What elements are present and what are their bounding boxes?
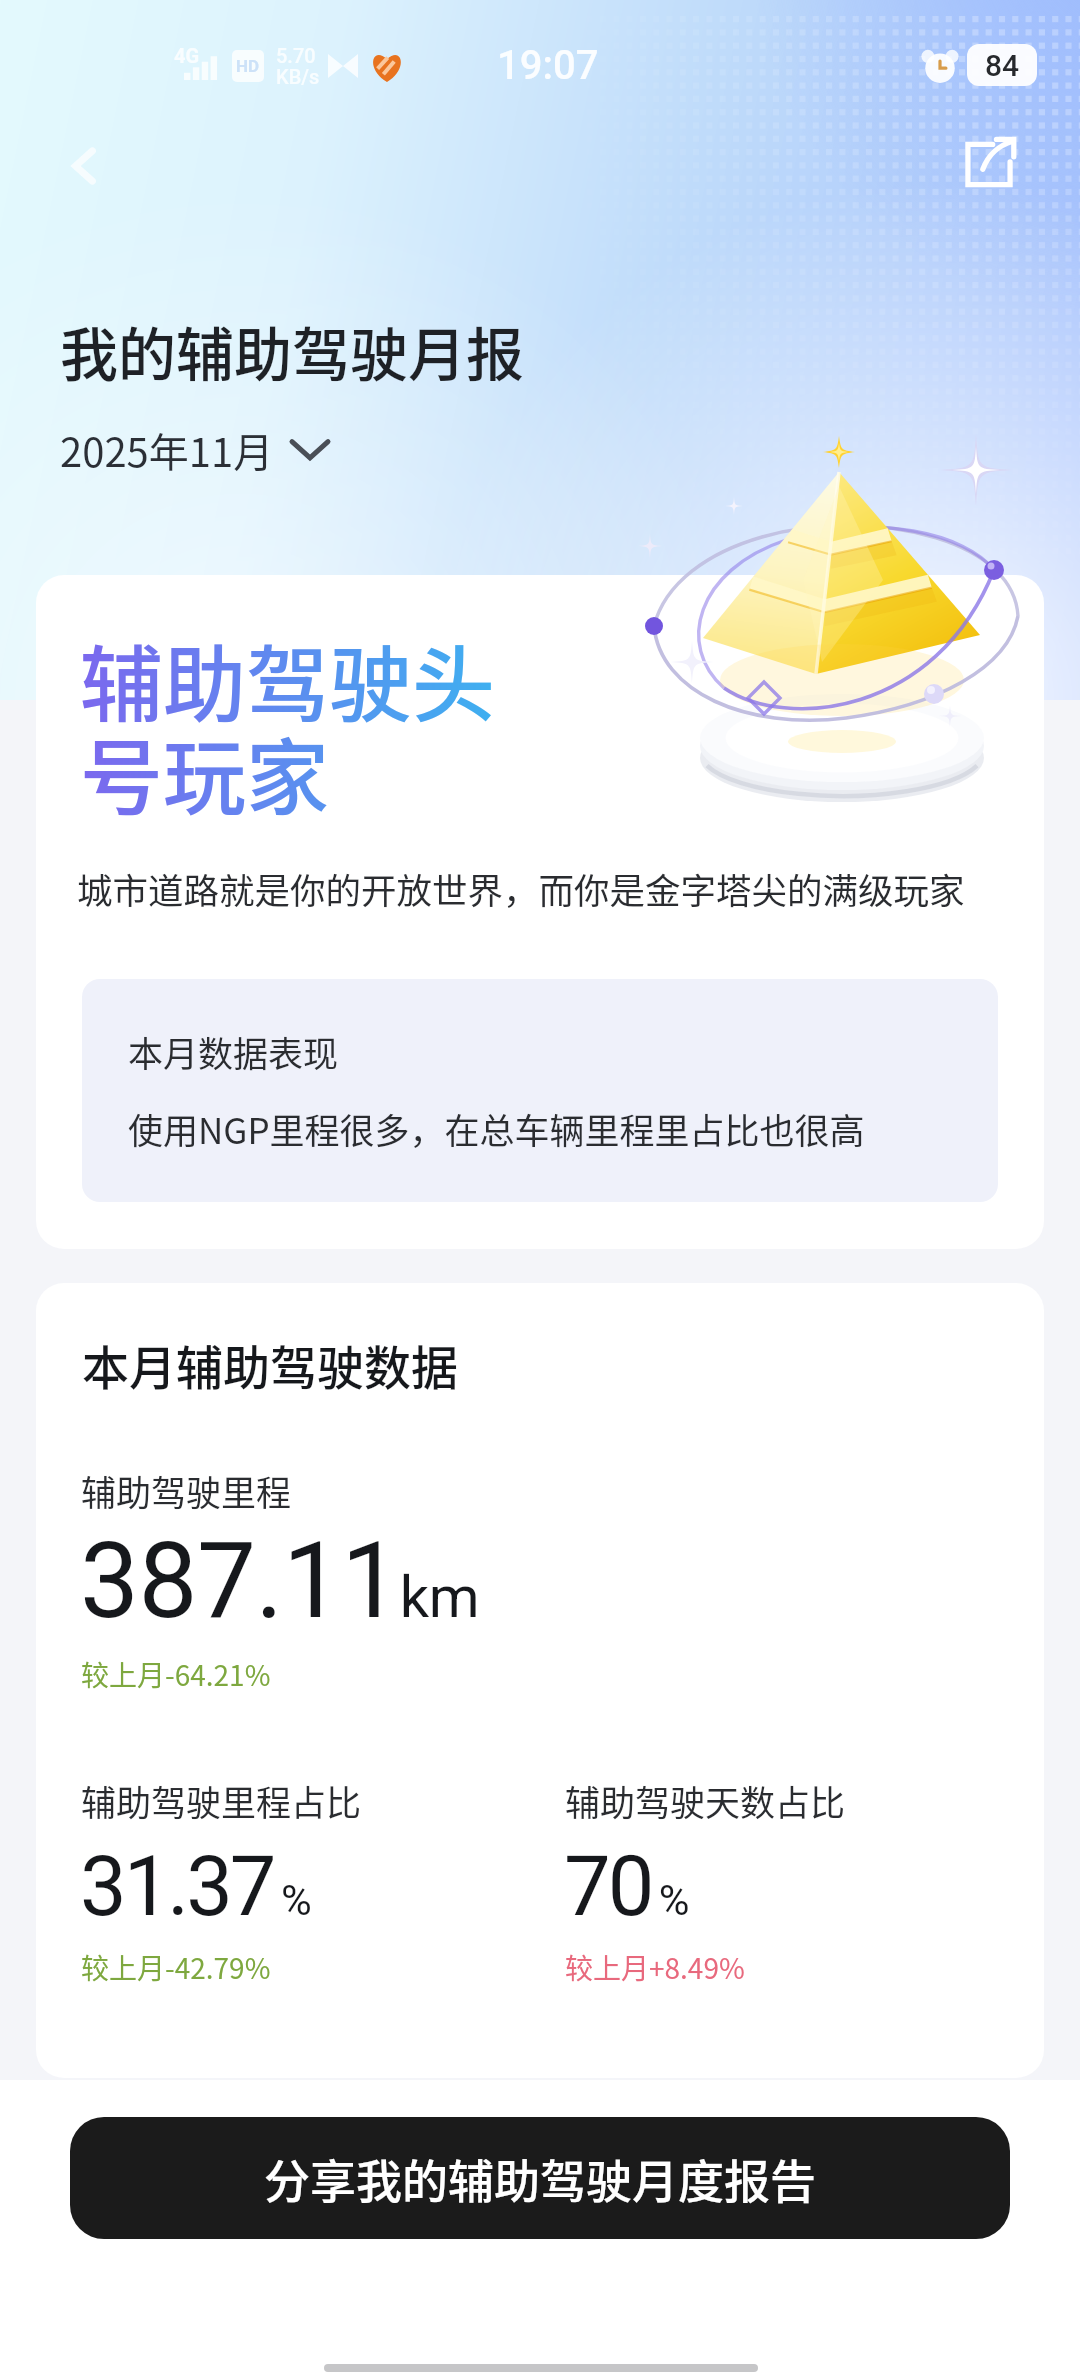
staticText: 辅助驾驶天数占比 [565, 1775, 846, 1826]
staticText: 较上月+8.49% [565, 1947, 745, 1988]
button[interactable]: 2025年11月 [60, 421, 328, 479]
staticText: 19:07 [497, 42, 599, 89]
staticText: HD [236, 56, 260, 76]
staticText: 我的辅助驾驶月报 [60, 309, 525, 393]
staticText: 分享我的辅助驾驶月度报告 [264, 2145, 816, 2212]
button[interactable]: Share [946, 120, 1032, 206]
staticText: 5.70 KB/s [276, 44, 320, 89]
staticText: 本月数据表现 [128, 1026, 339, 1077]
staticText: 城市道路就是你的开放世界，而你是金字塔尖的满级玩家 [77, 863, 965, 914]
button[interactable]: Back [44, 126, 124, 206]
staticText: 较上月-42.79% [81, 1947, 271, 1988]
button[interactable]: 分享我的辅助驾驶月度报告 [70, 2117, 1010, 2239]
staticText: 84 [985, 48, 1020, 83]
staticText: 辅助驾驶里程占比 [81, 1775, 362, 1826]
staticText: 本月辅助驾驶数据 [82, 1330, 458, 1398]
staticText: 4G [174, 44, 200, 67]
staticText: 2025年11月 [60, 421, 274, 479]
staticText: 辅助驾驶里程 [81, 1465, 292, 1516]
staticText: 较上月-64.21% [81, 1654, 271, 1695]
staticText: 辅助驾驶头 号玩家 [80, 619, 495, 832]
staticText: 使用NGP里程很多，在总车辆里程里占比也很高 [128, 1103, 865, 1154]
staticText: 387.11km [80, 1520, 480, 1643]
staticText: 31.37 % [80, 1838, 309, 1935]
staticText: 70 % [564, 1838, 687, 1935]
